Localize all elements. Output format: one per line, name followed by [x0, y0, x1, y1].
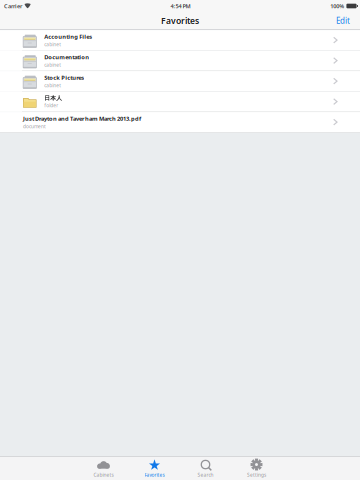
staticText: Search — [197, 472, 213, 478]
button[interactable]: Search — [180, 457, 231, 480]
staticText: 4:54 PM — [170, 2, 190, 10]
staticText: Just Drayton and Taverham March 2013.pdf — [23, 115, 141, 122]
button[interactable]: 日本人 — [0, 92, 360, 112]
button[interactable]: Accounting Files — [0, 30, 360, 50]
staticText: 100% — [330, 2, 344, 10]
staticText: Settings — [247, 472, 266, 478]
staticText: 日本人 — [44, 94, 62, 102]
staticText: Cabinets — [93, 472, 113, 478]
staticText: cabinet — [44, 82, 61, 88]
staticText: Documentation — [44, 53, 89, 61]
staticText: Favorites — [161, 15, 199, 26]
button[interactable]: Documentation — [0, 51, 360, 71]
staticText: Carrier — [4, 2, 22, 10]
staticText: cabinet — [44, 61, 61, 68]
staticText: folder — [44, 102, 58, 109]
staticText: Accounting Files — [44, 33, 92, 40]
staticText: cabinet — [44, 41, 61, 47]
staticText: Edit — [336, 15, 350, 26]
button[interactable]: Cabinets — [78, 457, 129, 480]
button[interactable]: Favorites — [129, 457, 180, 480]
button[interactable]: Stock Pictures — [0, 71, 360, 91]
button[interactable]: Edit — [326, 12, 360, 29]
button[interactable]: Just Drayton and Taverham March 2013.pdf — [0, 112, 360, 132]
staticText: Favorites — [144, 472, 164, 478]
button[interactable]: Settings — [231, 457, 282, 480]
staticText: document — [23, 123, 46, 129]
staticText: Stock Pictures — [44, 74, 84, 81]
